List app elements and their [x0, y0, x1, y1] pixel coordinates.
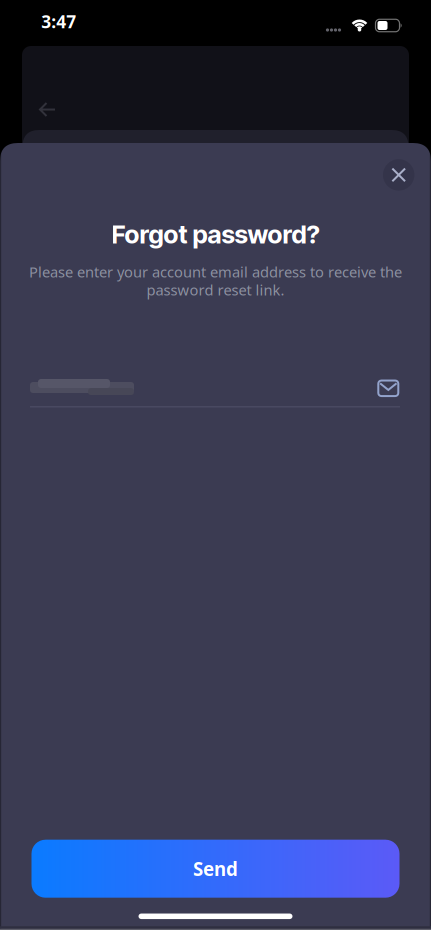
staticText: 3:47: [41, 10, 76, 33]
staticText: Forgot password?: [111, 219, 319, 250]
staticText: password reset link.: [146, 280, 284, 300]
button[interactable]: Send: [31, 840, 399, 898]
staticText: Please enter your account email address …: [29, 262, 402, 281]
staticText: Send: [193, 856, 238, 881]
button[interactable]: Close: [383, 159, 414, 191]
button[interactable]: Email address: [30, 368, 400, 410]
